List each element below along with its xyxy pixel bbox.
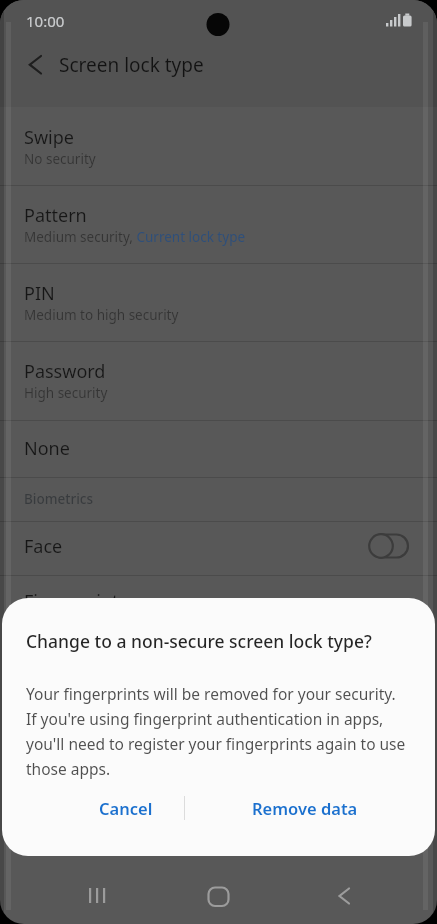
staticText: Cancel: [99, 797, 153, 819]
button[interactable]: [0, 185, 437, 263]
staticText: 10:00: [26, 11, 65, 31]
staticText: None: [24, 436, 70, 461]
staticText: No security: [24, 150, 96, 168]
staticText: you'll need to register your fingerprint…: [26, 733, 406, 754]
staticText: Medium to high security: [24, 306, 179, 324]
button[interactable]: [0, 263, 437, 341]
button[interactable]: [272, 866, 377, 924]
button[interactable]: Cancel: [26, 784, 226, 832]
staticText: If you're using fingerprint authenticati…: [26, 708, 384, 729]
staticText: Swipe: [24, 125, 74, 150]
button[interactable]: [60, 866, 165, 924]
staticText: Fingerprint: [24, 589, 119, 614]
button[interactable]: [166, 866, 271, 924]
staticText: Change to a non-secure screen lock type?: [26, 629, 372, 653]
staticText: Password: [24, 359, 106, 384]
staticText: Biometrics: [24, 490, 93, 508]
button[interactable]: Remove data: [205, 784, 405, 832]
button[interactable]: [0, 341, 437, 420]
staticText: Remove data: [252, 797, 358, 819]
button[interactable]: [14, 45, 54, 85]
staticText: Face: [24, 534, 63, 559]
staticText: those apps.: [26, 758, 111, 779]
staticText: PIN: [24, 281, 55, 306]
staticText: High security: [24, 384, 108, 402]
staticText: Medium security, Current lock type: [24, 228, 246, 246]
staticText: Screen lock type: [59, 52, 204, 78]
staticText: Your fingerprints will be removed for yo…: [26, 683, 396, 704]
button[interactable]: [0, 522, 437, 574]
button[interactable]: [0, 107, 437, 185]
button[interactable]: [0, 420, 437, 477]
staticText: Pattern: [24, 203, 87, 228]
